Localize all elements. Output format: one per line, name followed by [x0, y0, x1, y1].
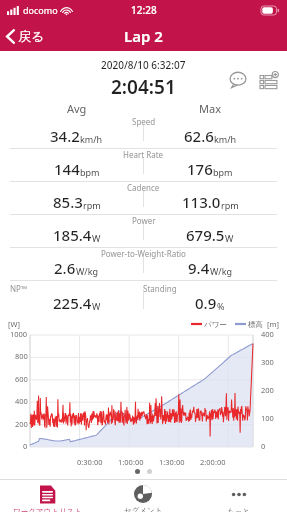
- staticText: rpm: [83, 199, 101, 211]
- staticText: rpm: [221, 199, 239, 211]
- staticText: ワークアウトリスト: [13, 507, 82, 512]
- staticText: 1:30:00: [159, 457, 185, 467]
- staticText: 400: [261, 329, 274, 339]
- staticText: bpm: [80, 166, 100, 178]
- staticText: Cadence: [127, 182, 160, 193]
- staticText: 2:04:51: [111, 74, 176, 100]
- staticText: 144: [54, 159, 80, 179]
- button[interactable]: ワークアウトリスト: [0, 480, 95, 512]
- staticText: docomo: [23, 4, 58, 16]
- staticText: Speed: [132, 116, 156, 127]
- staticText: 62.6: [184, 126, 214, 146]
- staticText: 200: [261, 385, 274, 395]
- staticText: 1000: [10, 329, 28, 339]
- staticText: bpm: [213, 166, 233, 178]
- staticText: 2:00:00: [200, 457, 226, 467]
- staticText: 300: [261, 357, 274, 367]
- button[interactable]: 戻る: [0, 24, 53, 48]
- staticText: Power-to-Weight-Ratio: [101, 248, 186, 259]
- staticText: km/h: [214, 133, 237, 145]
- staticText: Avg: [67, 101, 87, 116]
- staticText: W: [92, 300, 101, 312]
- staticText: 85.3: [53, 192, 83, 212]
- button[interactable]: Add data field: [257, 69, 281, 91]
- staticText: 34.2: [50, 126, 80, 146]
- staticText: セグメント: [124, 506, 163, 512]
- staticText: %: [217, 300, 225, 312]
- staticText: 標高: [248, 320, 263, 329]
- button[interactable]: もっと: [191, 480, 287, 512]
- staticText: 2020/8/10 6:32:07: [101, 58, 186, 72]
- staticText: NP™: [10, 283, 28, 294]
- staticText: Standing: [143, 283, 177, 294]
- staticText: 12:28: [131, 3, 157, 17]
- staticText: 2.6: [54, 258, 76, 278]
- staticText: km/h: [80, 133, 103, 145]
- staticText: 200: [15, 419, 28, 429]
- staticText: Heart Rate: [123, 149, 164, 160]
- staticText: 0: [23, 441, 28, 451]
- staticText: 0.9: [195, 293, 217, 313]
- staticText: 800: [15, 351, 28, 361]
- staticText: W/kg: [210, 265, 233, 277]
- button[interactable]: セグメント: [95, 480, 191, 512]
- staticText: Power: [132, 215, 156, 226]
- staticText: 戻る: [18, 28, 45, 44]
- staticText: 1:00:00: [118, 457, 144, 467]
- staticText: 400: [15, 396, 28, 406]
- staticText: [m]: [267, 319, 279, 329]
- staticText: 176: [187, 159, 213, 179]
- staticText: 185.4: [53, 225, 92, 245]
- staticText: 679.5: [186, 225, 225, 245]
- staticText: Max: [199, 101, 221, 116]
- staticText: 9.4: [188, 258, 210, 278]
- staticText: W: [225, 232, 234, 244]
- button[interactable]: Comments: [226, 69, 250, 91]
- staticText: 113.0: [182, 192, 221, 212]
- staticText: 225.4: [53, 293, 92, 313]
- staticText: 600: [15, 374, 28, 384]
- staticText: もっと: [227, 507, 251, 512]
- staticText: W: [92, 232, 101, 244]
- staticText: 100: [261, 413, 274, 423]
- staticText: [W]: [8, 319, 20, 329]
- staticText: 0:30:00: [77, 457, 103, 467]
- staticText: Lap 2: [124, 26, 163, 46]
- staticText: 0: [261, 441, 266, 451]
- staticText: W/kg: [76, 265, 99, 277]
- staticText: パワー: [204, 320, 227, 329]
